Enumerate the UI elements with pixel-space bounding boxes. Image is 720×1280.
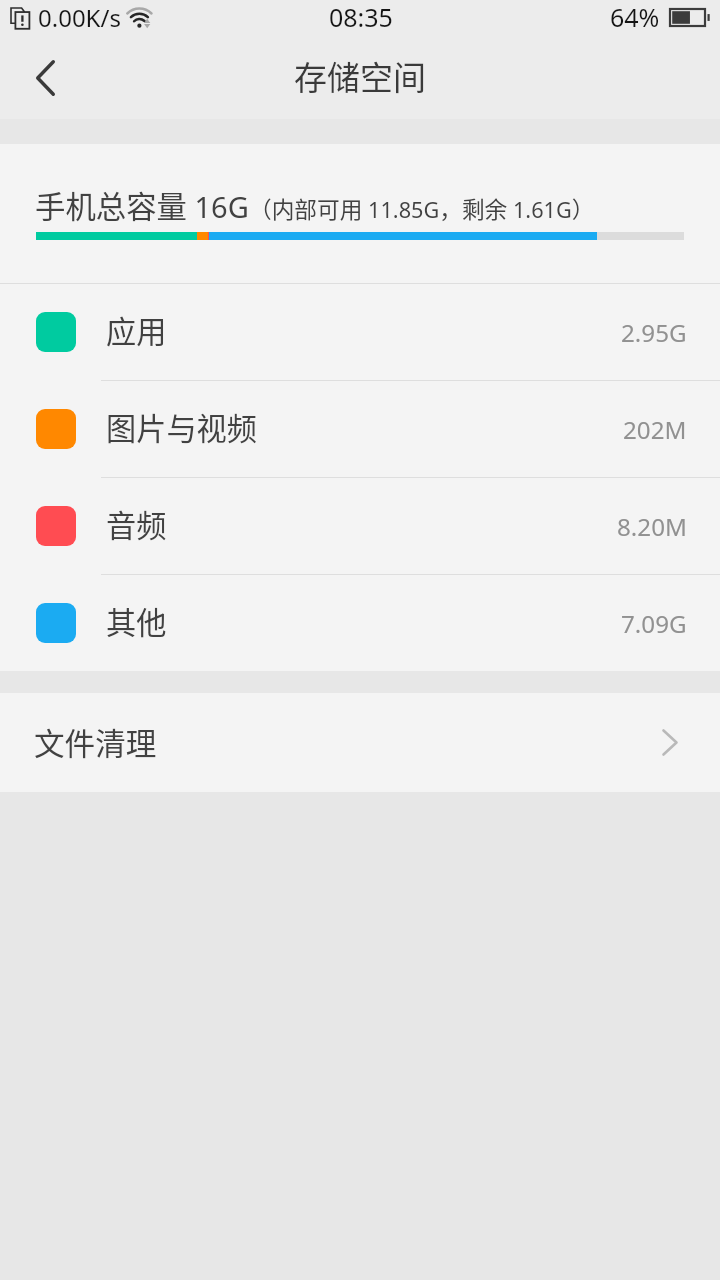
staticText: 图片与视频 [106, 405, 257, 449]
staticText: 手机总容量 16G [35, 183, 249, 227]
staticText: 7.09G [621, 607, 687, 640]
staticText: （内部可用 11.85G，剩余 1.61G） [249, 192, 595, 225]
staticText: 其他 [106, 599, 167, 643]
staticText: 64% [610, 0, 660, 34]
staticText: 0.00K/s [38, 1, 121, 34]
staticText: 8.20M [617, 510, 687, 543]
button[interactable]: Back [0, 40, 92, 119]
staticText: 应用 [106, 308, 167, 352]
staticText: 08:35 [329, 0, 393, 34]
staticText: 文件清理 [34, 720, 157, 764]
button[interactable]: 其他 [0, 575, 720, 671]
staticText: 202M [623, 413, 687, 446]
staticText: 音频 [106, 502, 167, 546]
button[interactable]: 应用 [0, 284, 720, 381]
button[interactable]: 文件清理 [0, 693, 720, 792]
staticText: 2.95G [621, 316, 687, 349]
button[interactable]: 图片与视频 [0, 381, 720, 478]
button[interactable]: 音频 [0, 478, 720, 575]
staticText: 存储空间 [294, 52, 426, 100]
